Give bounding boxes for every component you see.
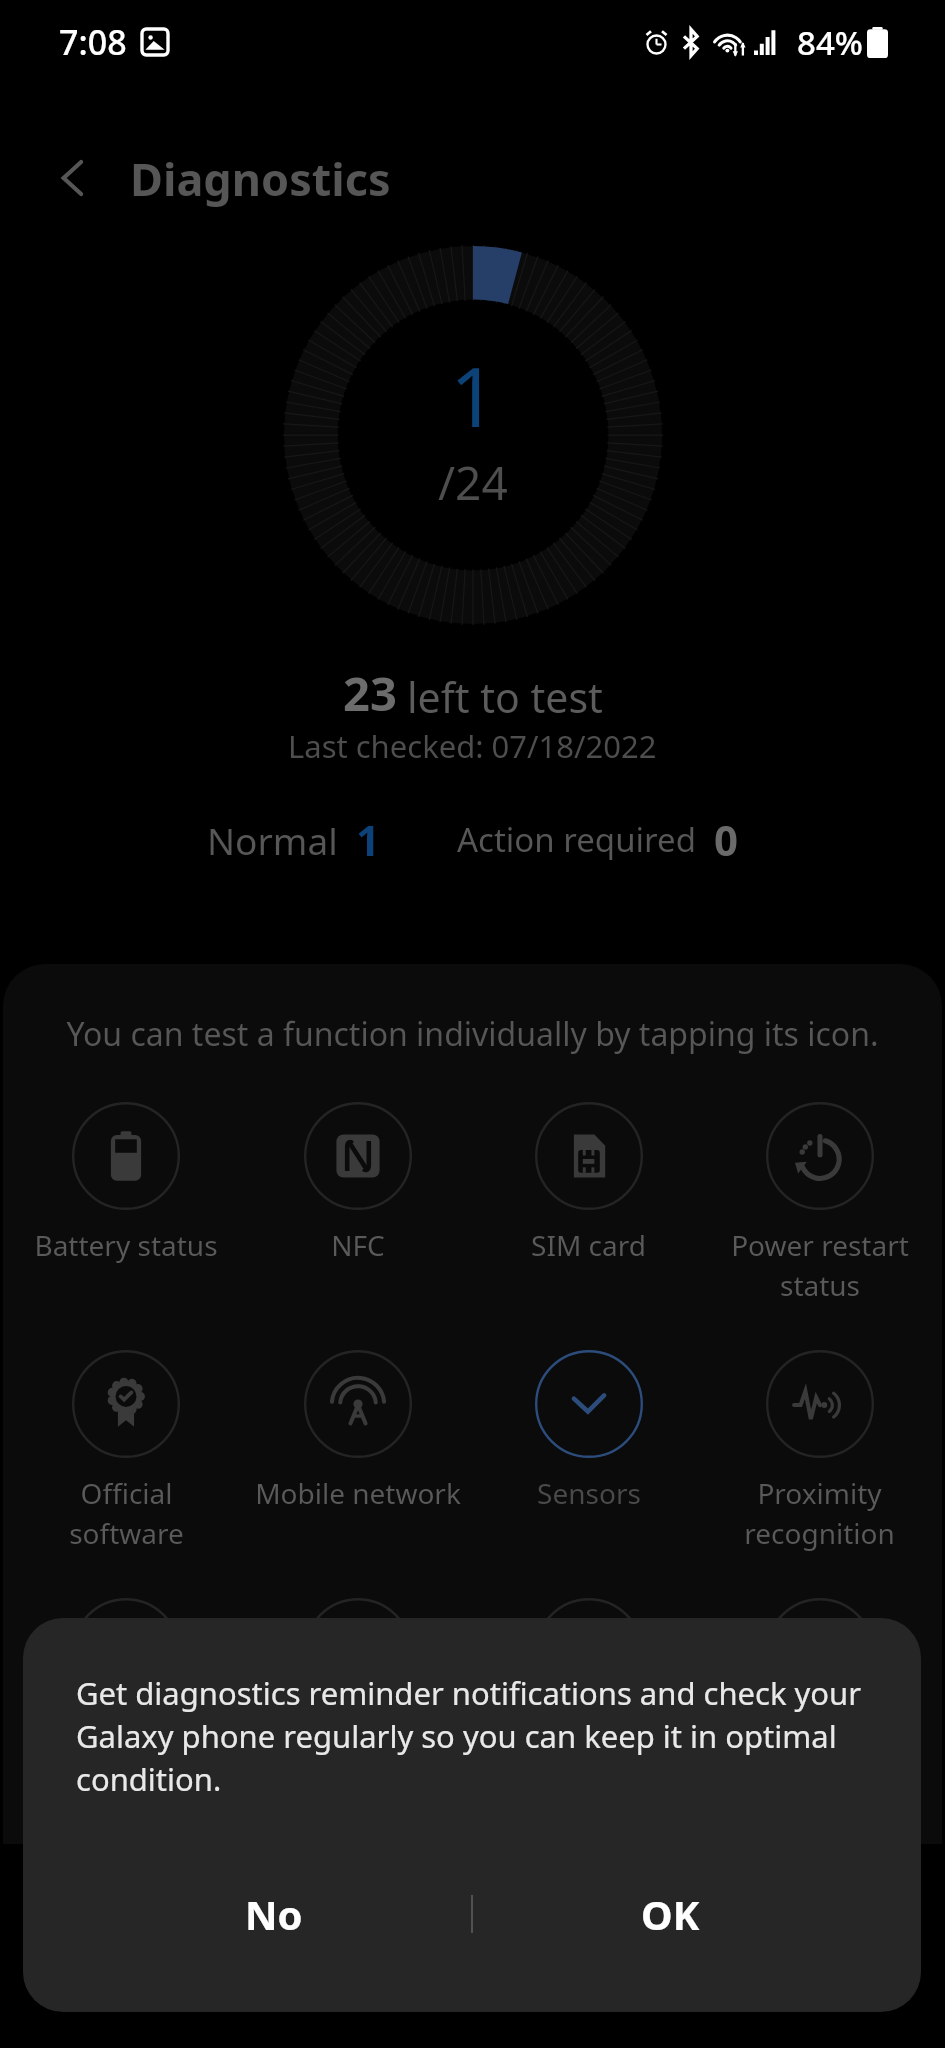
- button[interactable]: Back: [30, 136, 114, 220]
- button[interactable]: Battery status: [10, 1102, 242, 1264]
- button[interactable]: No: [75, 1864, 472, 1964]
- staticText: 23: [343, 661, 397, 725]
- button[interactable]: Official software: [10, 1350, 242, 1553]
- staticText: Mobile network: [255, 1474, 461, 1512]
- staticText: Action required: [457, 817, 696, 862]
- staticText: Power restart status: [731, 1226, 909, 1305]
- staticText: OK: [641, 1887, 700, 1941]
- staticText: NFC: [331, 1226, 385, 1264]
- staticText: 1: [450, 339, 497, 451]
- button[interactable]: Test: [704, 1598, 935, 1706]
- button[interactable]: NFC: [242, 1102, 473, 1264]
- staticText: Last checked: 07/18/2022: [288, 725, 657, 767]
- staticText: You can test a function individually by …: [0, 1012, 945, 1056]
- staticText: 1: [356, 811, 381, 868]
- button[interactable]: Power restart status: [704, 1102, 935, 1305]
- staticText: No: [245, 1887, 303, 1941]
- button[interactable]: Test: [473, 1598, 704, 1706]
- button[interactable]: Sensors: [473, 1350, 704, 1512]
- staticText: 7:08: [59, 19, 127, 65]
- staticText: Official software: [69, 1474, 184, 1553]
- button[interactable]: Test: [242, 1598, 473, 1706]
- button[interactable]: Test: [10, 1598, 242, 1706]
- staticText: Battery status: [34, 1226, 218, 1264]
- staticText: left to test: [407, 669, 603, 725]
- staticText: /24: [438, 451, 508, 514]
- staticText: Proximity recognition: [744, 1474, 895, 1553]
- staticText: 84%: [797, 20, 863, 65]
- staticText: Get diagnostics reminder notifications a…: [76, 1672, 862, 1800]
- staticText: 0: [714, 811, 739, 868]
- staticText: SIM card: [531, 1226, 646, 1264]
- staticText: Normal: [207, 815, 338, 865]
- button[interactable]: Mobile network: [242, 1350, 473, 1512]
- button[interactable]: OK: [472, 1864, 869, 1964]
- staticText: Sensors: [537, 1474, 641, 1512]
- button[interactable]: Proximity recognition: [704, 1350, 935, 1553]
- button[interactable]: SIM card: [473, 1102, 704, 1264]
- staticText: Diagnostics: [130, 148, 391, 209]
